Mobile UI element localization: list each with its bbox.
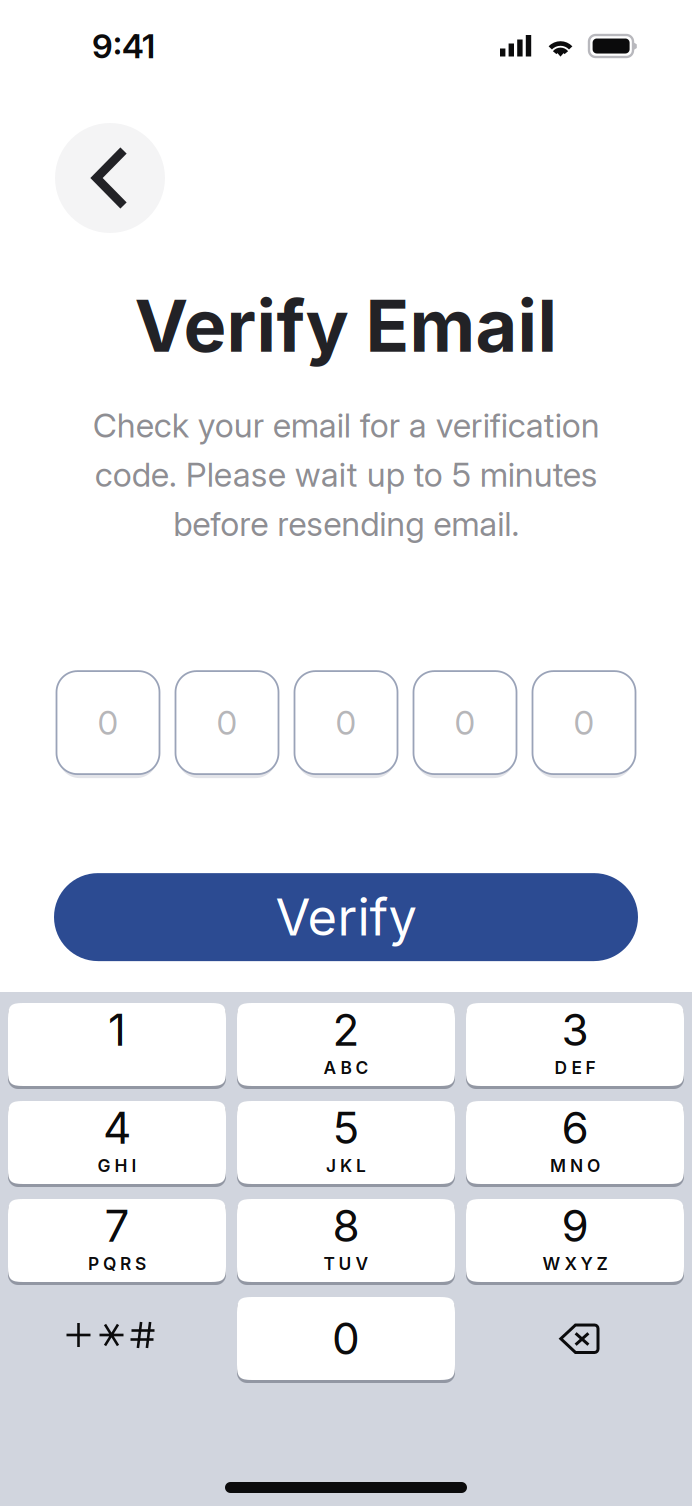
staticText: T U V (323, 1253, 368, 1274)
button[interactable]: Symbols (8, 1298, 226, 1381)
staticText: 0 (335, 702, 356, 743)
staticText: 9:41 (92, 26, 155, 66)
button[interactable]: 5 (237, 1101, 455, 1187)
staticText: 0 (573, 702, 594, 743)
button[interactable]: 0 (237, 1297, 455, 1383)
button[interactable]: 8 (237, 1199, 455, 1285)
staticText: 0 (332, 1312, 360, 1365)
button[interactable]: 3 (466, 1003, 684, 1089)
button[interactable]: 7 (8, 1199, 226, 1285)
staticText: J K L (326, 1155, 366, 1176)
staticText: D E F (554, 1057, 595, 1078)
staticText: Verify (275, 886, 416, 948)
button[interactable]: Verify (54, 873, 638, 961)
button[interactable]: 2 (237, 1003, 455, 1089)
staticText: Verify Email (134, 282, 557, 369)
staticText: P Q R S (88, 1253, 146, 1274)
button[interactable]: 9 (466, 1199, 684, 1285)
staticText: 1 (108, 1003, 126, 1056)
button[interactable]: Code digit (413, 671, 516, 779)
button[interactable]: Code digit (532, 671, 635, 779)
staticText: A B C (323, 1057, 368, 1078)
staticText: W X Y Z (542, 1253, 607, 1274)
button[interactable]: Code digit (294, 671, 397, 779)
staticText: 0 (97, 702, 118, 743)
button[interactable]: 6 (466, 1101, 684, 1187)
staticText: 6 (561, 1101, 588, 1154)
button[interactable]: 4 (8, 1101, 226, 1187)
button[interactable]: 1 (8, 1003, 226, 1089)
button[interactable]: Code digit (175, 671, 278, 779)
staticText: 4 (103, 1101, 131, 1154)
staticText: 2 (332, 1003, 359, 1056)
staticText: 9 (561, 1199, 588, 1252)
staticText: 8 (332, 1199, 359, 1252)
staticText: 0 (216, 702, 237, 743)
staticText: G H I (97, 1155, 136, 1176)
staticText: 3 (561, 1003, 588, 1056)
button[interactable]: Back (55, 123, 165, 233)
staticText: 5 (332, 1101, 359, 1154)
staticText: 0 (454, 702, 475, 743)
button[interactable]: Code digit (56, 671, 159, 779)
button[interactable]: Delete (466, 1298, 684, 1381)
staticText: Check your email for a verification code… (92, 405, 599, 544)
staticText: 7 (104, 1199, 129, 1252)
staticText: M N O (550, 1155, 600, 1176)
